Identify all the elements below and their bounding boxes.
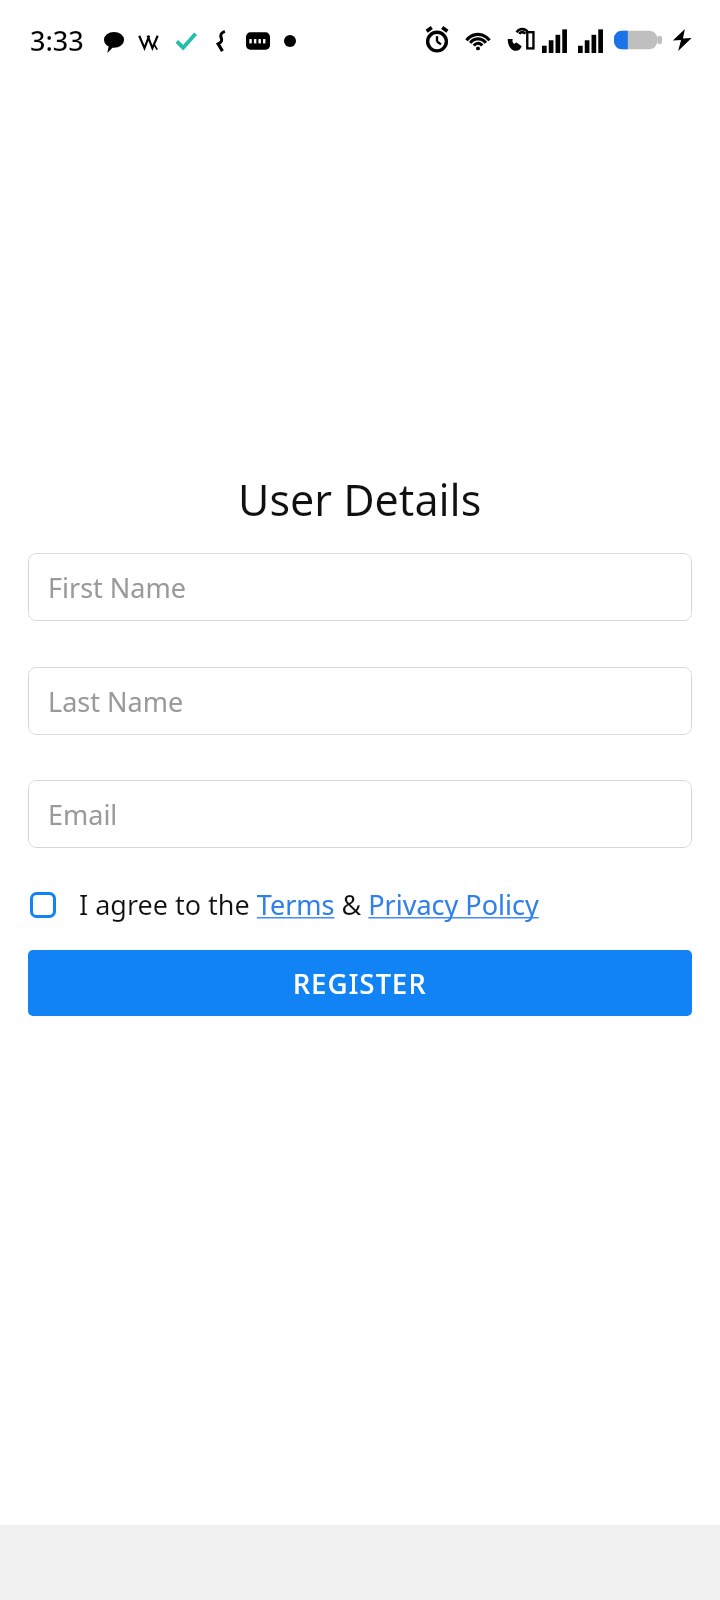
staticText: Last Name [48, 683, 184, 720]
button[interactable]: Last Name [28, 667, 692, 735]
button[interactable]: Agree to terms checkbox [28, 890, 58, 920]
button[interactable]: Email [28, 780, 692, 848]
staticText: User Details [238, 470, 482, 529]
button[interactable]: First Name [28, 553, 692, 621]
button[interactable]: REGISTER [28, 950, 692, 1016]
staticText: REGISTER [293, 965, 427, 1002]
button[interactable]: I agree to the Terms & Privacy Policy [79, 886, 539, 923]
staticText: First Name [48, 569, 186, 606]
staticText: I agree to the Terms & Privacy Policy [79, 886, 539, 923]
staticText: Email [48, 796, 118, 833]
staticText: 3:33 [30, 22, 84, 59]
